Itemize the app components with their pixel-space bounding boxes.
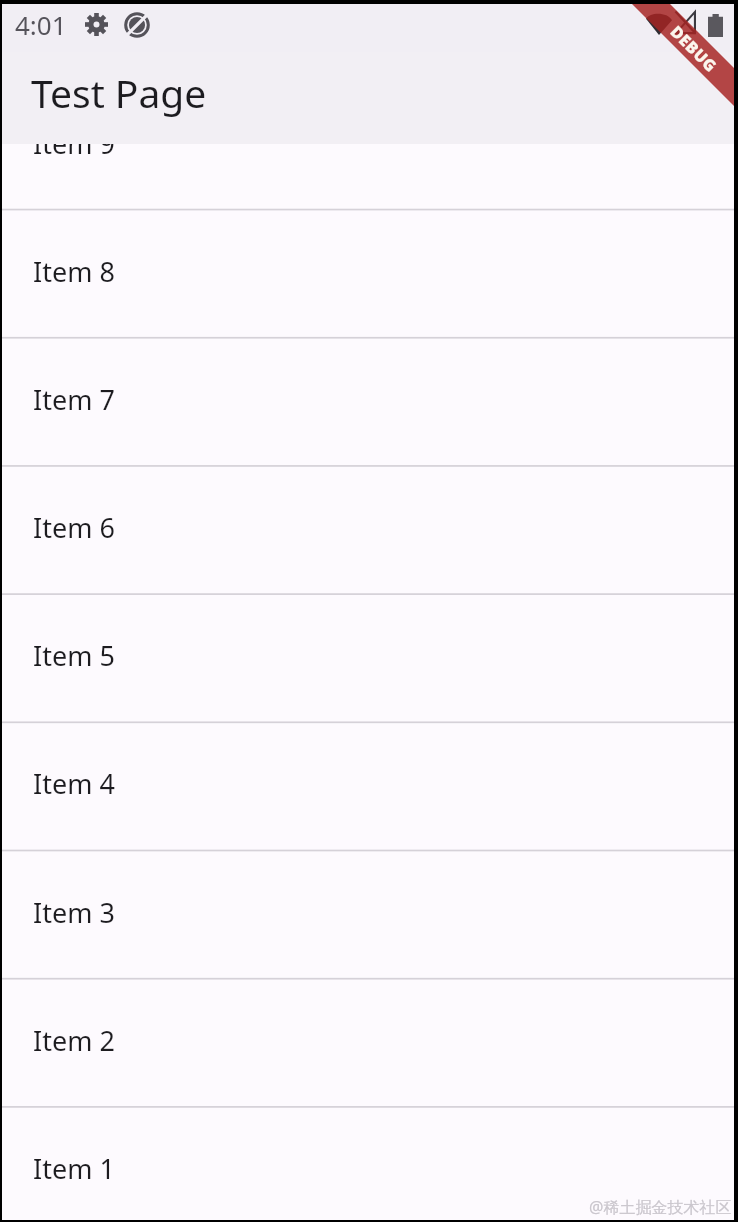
staticText: Item 2 xyxy=(33,1022,115,1059)
staticText: Item 6 xyxy=(33,509,115,546)
staticText: Test Page xyxy=(31,66,207,119)
button[interactable]: Item 7 xyxy=(2,337,734,465)
staticText: Item 8 xyxy=(33,253,115,290)
staticText: Item 4 xyxy=(33,765,115,802)
other: Wi-Fi xyxy=(646,13,672,35)
staticText: @稀土掘金技术社区 xyxy=(589,1196,732,1218)
staticText: Item 7 xyxy=(33,381,115,418)
staticText: Item 9 xyxy=(33,144,115,162)
staticText: Item 1 xyxy=(33,1150,115,1187)
other: Settings xyxy=(85,13,108,36)
other: Do not disturb xyxy=(124,12,150,38)
button[interactable]: Item 1 xyxy=(2,1106,734,1220)
staticText: DEBUG xyxy=(666,21,722,77)
button[interactable]: Item 9 xyxy=(2,144,734,209)
button[interactable]: Item 5 xyxy=(2,593,734,721)
staticText: Item 5 xyxy=(33,637,115,674)
staticText: Item 3 xyxy=(33,894,115,931)
button[interactable]: Item 2 xyxy=(2,978,734,1106)
button[interactable]: Item 4 xyxy=(2,721,734,849)
staticText: 4:01 xyxy=(15,7,67,42)
button[interactable]: Item 6 xyxy=(2,465,734,593)
other: No cellular signal xyxy=(675,11,696,34)
button[interactable]: Item 8 xyxy=(2,209,734,337)
other: Battery xyxy=(708,14,723,37)
button[interactable]: Item 3 xyxy=(2,850,734,978)
